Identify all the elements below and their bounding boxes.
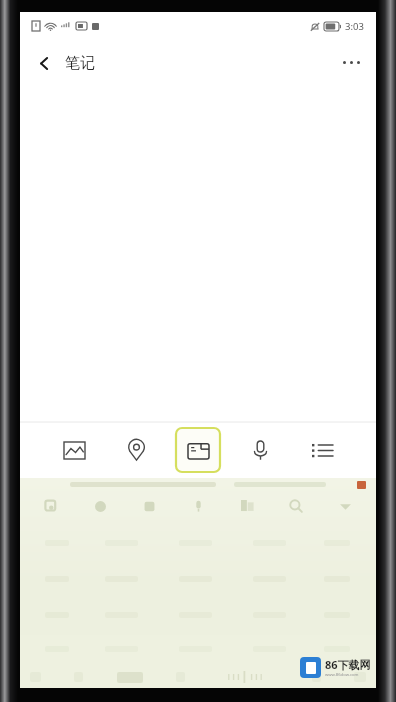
- button[interactable]: Key 5: [309, 533, 364, 552]
- other: Back: [34, 53, 54, 73]
- button[interactable]: More options: [327, 49, 376, 76]
- button[interactable]: Insert location: [114, 428, 158, 472]
- button[interactable]: Space: [218, 671, 278, 683]
- button[interactable]: Key 3: [161, 569, 229, 588]
- button[interactable]: Key 1: [32, 569, 81, 588]
- button[interactable]: Voice input: [238, 428, 282, 472]
- button[interactable]: Key 2: [87, 569, 155, 588]
- button[interactable]: Keyboard key: [354, 672, 366, 682]
- button[interactable]: Key 4: [235, 569, 303, 588]
- staticText: 笔记: [65, 54, 95, 73]
- staticText: 3:03: [345, 20, 364, 33]
- button[interactable]: Key 1: [32, 533, 81, 552]
- button[interactable]: Keyboard key: [312, 672, 321, 682]
- staticText: www.86dow.com: [325, 672, 359, 678]
- button[interactable]: Checklist: [300, 428, 344, 472]
- button[interactable]: Keyboard tool: [283, 493, 309, 519]
- button[interactable]: Key 4: [235, 640, 303, 658]
- button[interactable]: Key 5: [309, 640, 364, 658]
- button[interactable]: Key 5: [309, 605, 364, 624]
- button[interactable]: Insert note card: [176, 428, 220, 472]
- staticText: 86下载网: [325, 657, 371, 672]
- button[interactable]: Keyboard tool: [234, 493, 260, 519]
- button[interactable]: Back: [20, 47, 105, 79]
- button[interactable]: Insert image: [52, 428, 96, 472]
- button[interactable]: Keyboard tool: [87, 493, 113, 519]
- button[interactable]: Key 1: [32, 605, 81, 624]
- button[interactable]: Keyboard tool: [185, 493, 211, 519]
- button[interactable]: Keyboard tool: [136, 493, 162, 519]
- button[interactable]: Keyboard tool: [38, 493, 64, 519]
- button[interactable]: Keyboard tool: [332, 493, 358, 519]
- button[interactable]: Key 5: [309, 569, 364, 588]
